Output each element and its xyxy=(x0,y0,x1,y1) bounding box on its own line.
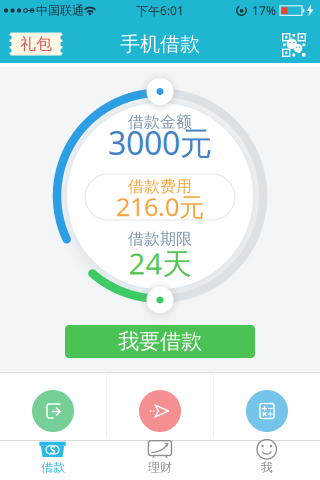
staticText: 我要借款 xyxy=(118,328,202,355)
button[interactable]: 礼包 xyxy=(9,32,62,55)
staticText: 216.0元 xyxy=(116,190,204,223)
staticText: 借款金额 xyxy=(128,112,192,132)
button[interactable] xyxy=(246,390,288,432)
staticText: S xyxy=(49,443,55,457)
staticText: 手机借款 xyxy=(120,32,200,56)
staticText: 礼包 xyxy=(20,34,52,54)
button[interactable]: 理财 xyxy=(107,440,213,480)
button[interactable] xyxy=(32,390,74,432)
button[interactable] xyxy=(282,33,306,57)
button[interactable]: S xyxy=(0,440,107,480)
staticText: 24天 xyxy=(128,243,191,282)
button[interactable]: 我 xyxy=(213,440,320,480)
staticText: 我 xyxy=(261,460,273,475)
staticText: 17% xyxy=(252,2,276,18)
staticText: 理财 xyxy=(148,460,172,475)
staticText: 借款期限 xyxy=(128,229,192,249)
button[interactable] xyxy=(139,390,181,432)
staticText: 3000元 xyxy=(108,121,212,164)
staticText: 中国联通 xyxy=(36,3,84,18)
staticText: 借款 xyxy=(41,460,65,475)
button[interactable]: 我要借款 xyxy=(65,325,255,358)
staticText: 下午6:01 xyxy=(136,2,184,18)
staticText: 借款费用 xyxy=(128,177,192,196)
